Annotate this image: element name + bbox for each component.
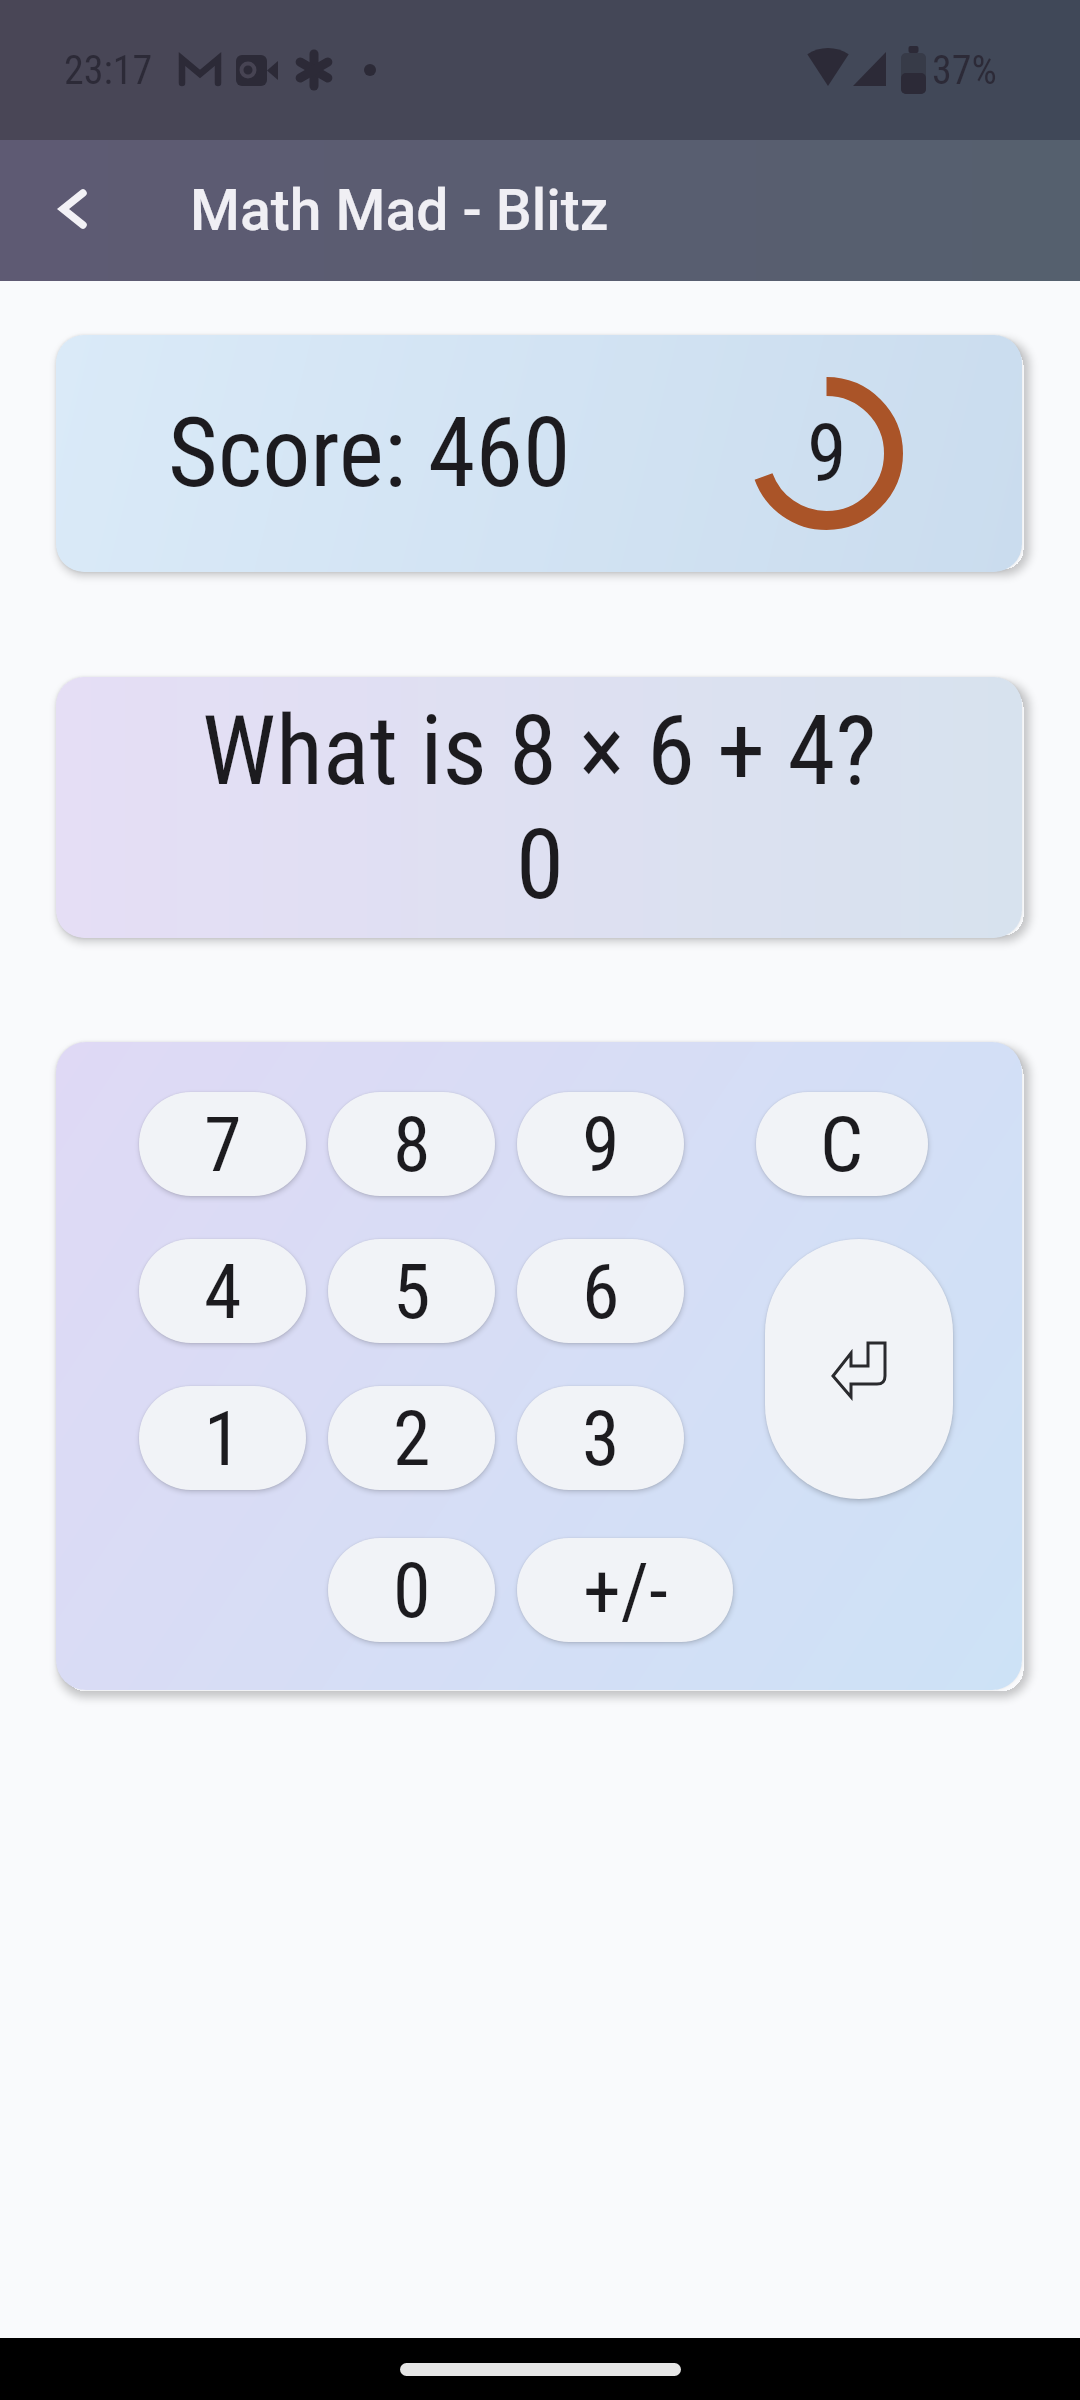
button[interactable]: 3 [517,1386,684,1490]
staticText: 1 [204,1394,242,1483]
staticText: 2 [393,1394,431,1483]
staticText: +/- [583,1546,668,1635]
button[interactable]: +/- [517,1538,733,1642]
button[interactable]: 6 [517,1239,684,1343]
staticText: What is 8 × 6 + 4? [202,694,877,808]
staticText: 4 [204,1247,242,1336]
button[interactable]: 5 [328,1239,495,1343]
staticText: 5 [393,1247,431,1336]
button[interactable]: 2 [328,1386,495,1490]
button[interactable] [765,1239,953,1499]
button[interactable]: 7 [139,1092,306,1196]
button[interactable]: 4 [139,1239,306,1343]
button[interactable]: 0 [328,1538,495,1642]
staticText: 8 [393,1100,431,1189]
staticText: 9 [582,1100,620,1189]
button[interactable]: 9 [517,1092,684,1196]
staticText: 3 [582,1394,620,1483]
staticText: 0 [516,808,564,922]
staticText: 7 [204,1100,242,1189]
button[interactable] [40,178,106,244]
button[interactable]: 8 [328,1092,495,1196]
staticText: Math Mad - Blitz [190,177,609,244]
staticText: C [820,1100,864,1189]
staticText: 37% [932,47,997,94]
button[interactable]: C [756,1092,928,1196]
staticText: 0 [393,1546,431,1635]
staticText: 9 [807,407,847,501]
staticText: 23:17 [64,47,153,94]
staticText: 6 [582,1247,620,1336]
staticText: Score: 460 [168,397,571,510]
button[interactable]: 1 [139,1386,306,1490]
